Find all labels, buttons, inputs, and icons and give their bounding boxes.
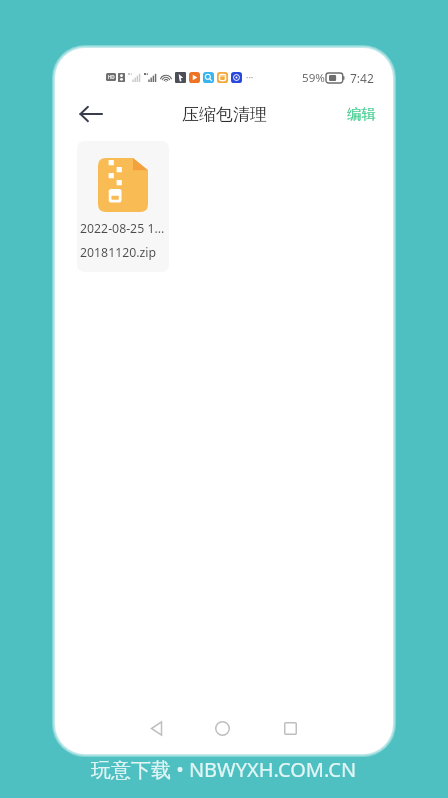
staticText: 编辑 [347, 105, 376, 123]
staticText: 59% [302, 70, 325, 86]
staticText: 20181120.zip [80, 244, 157, 261]
staticText: 2022-08-25 1... [80, 220, 165, 237]
button[interactable]: 编辑 [330, 95, 393, 133]
button[interactable]: Back [135, 707, 177, 749]
button[interactable]: Recents [269, 707, 311, 749]
staticText: HD [108, 74, 115, 80]
staticText: 玩意下载 • NBWYXH.COM.CN [91, 756, 357, 783]
button[interactable]: 2022-08-25 1... [77, 141, 169, 272]
button[interactable]: Home [201, 707, 243, 749]
staticText: 7:42 [350, 70, 374, 86]
staticText: ··· [246, 71, 254, 83]
staticText: 压缩包清理 [182, 104, 267, 125]
button[interactable]: Back [71, 94, 111, 134]
